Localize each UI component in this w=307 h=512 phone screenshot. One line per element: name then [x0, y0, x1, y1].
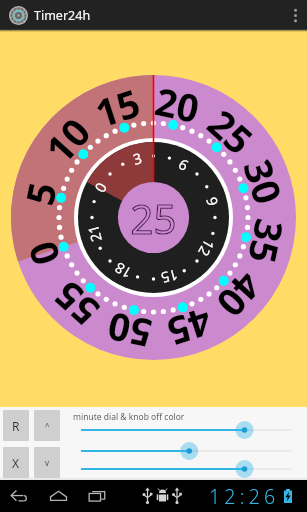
staticText: v — [45, 457, 50, 468]
button[interactable]: X — [3, 447, 29, 478]
button[interactable]: More options — [283, 0, 307, 30]
staticText: R — [12, 418, 20, 434]
button[interactable]: ^ — [34, 410, 60, 441]
button[interactable] — [0, 442, 307, 460]
button[interactable] — [0, 460, 307, 478]
button[interactable]: Home — [39, 480, 78, 512]
button[interactable]: v — [34, 447, 60, 478]
staticText: X — [12, 455, 20, 471]
button[interactable]: R — [3, 410, 29, 441]
button[interactable]: Back — [0, 480, 39, 512]
button[interactable] — [0, 421, 307, 439]
staticText: ^ — [45, 420, 50, 431]
staticText: Timer24h — [34, 7, 91, 24]
button[interactable]: Recents — [78, 480, 117, 512]
